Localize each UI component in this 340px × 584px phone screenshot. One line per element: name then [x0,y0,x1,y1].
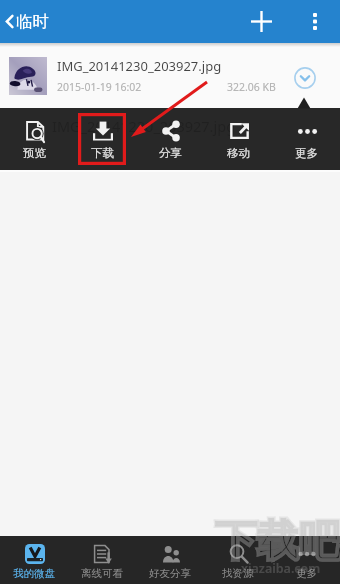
staticText: 预览 [23,146,46,160]
staticText: 322.06 KB [227,80,276,94]
button[interactable]: 预览 [0,108,68,170]
staticText: 下载 [91,146,114,160]
button[interactable]: 移动 [204,108,272,170]
staticText: 离线可看 [81,567,123,580]
staticText: IMG_20141230_203927.jpg [52,116,236,136]
button[interactable]: 分享 [136,108,204,170]
button[interactable]: 更多 [272,108,340,170]
staticText: 移动 [227,146,250,160]
staticText: 下载吧 [215,515,340,568]
staticText: IMG_20141230_203927.jpg [57,57,222,75]
button[interactable]: Expand [290,63,320,93]
staticText: 好友分享 [149,567,191,580]
staticText: 临时 [16,11,49,32]
button[interactable]: 找资源 [204,536,272,584]
staticText: 分享 [159,146,182,160]
staticText: 2015-01-19 16:02 [57,80,142,94]
staticText: 我的微盘 [13,567,55,580]
staticText: 找资源 [222,567,254,580]
staticText: 更多 [296,567,317,580]
button[interactable]: Add [232,0,290,43]
staticText: 更多 [295,146,318,160]
staticText: xiazaiba.com [241,560,321,577]
button[interactable]: 临时 [0,0,59,43]
button[interactable]: 好友分享 [136,536,204,584]
button[interactable]: 我的微盘 [0,536,68,584]
button[interactable]: More options [290,0,340,43]
staticText: 下载吧 [215,515,340,568]
button[interactable]: 离线可看 [68,536,136,584]
button[interactable]: 下载 [68,108,136,170]
button[interactable]: 更多 [272,536,340,584]
